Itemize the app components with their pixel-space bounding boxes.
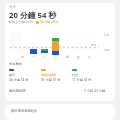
staticText: 社交 xyxy=(72,73,78,77)
staticText: 平均 xyxy=(91,43,97,46)
button[interactable]: 遊戲與娛樂 xyxy=(41,69,61,82)
staticText: 常用應用 xyxy=(9,62,22,66)
staticText: 總使用時間 xyxy=(9,89,26,93)
staticText: 1 小時 23 分鐘 xyxy=(84,88,106,93)
staticText: 最常用的應用程式 xyxy=(11,109,38,113)
staticText: 20 分鐘 54 秒 xyxy=(9,10,57,21)
staticText: 小時 xyxy=(104,48,110,51)
staticText: 今天 xyxy=(9,5,16,9)
staticText: 14 分鐘 24 秒 xyxy=(40,20,59,24)
button[interactable]: 社交 xyxy=(72,69,92,82)
button[interactable] xyxy=(5,104,115,120)
staticText: 四 xyxy=(66,55,69,59)
staticText: 較前上一週日平均 xyxy=(9,20,33,24)
staticText: 34 分鐘 14 秒 xyxy=(9,78,29,82)
staticText: 1 時 xyxy=(104,33,109,37)
staticText: 三 xyxy=(54,55,57,59)
staticText: 遊戲與娛樂 xyxy=(41,73,56,77)
staticText: 通訊 xyxy=(9,73,15,77)
staticText: 五 xyxy=(77,55,80,59)
staticText: 一 xyxy=(32,55,35,59)
staticText: 31 分鐘 51 秒 xyxy=(41,78,61,82)
button[interactable]: 總使用時間 xyxy=(9,88,106,93)
staticText: 二 xyxy=(43,55,46,59)
staticText: 日 xyxy=(21,55,24,59)
staticText: 六 xyxy=(88,55,91,59)
button[interactable]: 通訊 xyxy=(9,69,29,82)
staticText: 17 分鐘 33 秒 xyxy=(72,78,92,82)
